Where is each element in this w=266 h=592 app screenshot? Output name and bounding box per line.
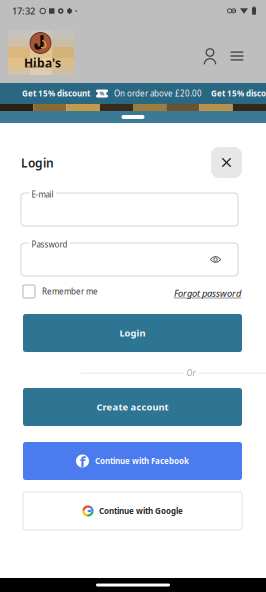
button[interactable]: Create account bbox=[23, 388, 242, 426]
staticText: f bbox=[80, 452, 86, 471]
staticText: a taste of india bbox=[27, 65, 47, 68]
staticText: Forgot password bbox=[174, 287, 241, 299]
staticText: Create account bbox=[96, 401, 168, 413]
button[interactable]: f bbox=[23, 442, 242, 480]
button[interactable]: Forgot password bbox=[174, 287, 241, 299]
staticText: Hiba's bbox=[24, 55, 61, 71]
staticText: 17:32 bbox=[12, 5, 35, 17]
button[interactable]: Remember me bbox=[23, 285, 98, 298]
staticText: Remember me bbox=[42, 286, 98, 297]
staticText: Login bbox=[119, 327, 145, 339]
button[interactable]: Account bbox=[196, 37, 224, 67]
button[interactable]: Continue with Google bbox=[23, 492, 242, 530]
staticText: % bbox=[99, 90, 104, 97]
staticText: Get 15% disco bbox=[211, 88, 266, 99]
staticText: E-mail bbox=[31, 189, 53, 200]
staticText: Or bbox=[186, 368, 195, 378]
staticText: On order above £20.00 bbox=[114, 88, 202, 99]
button[interactable]: Login bbox=[23, 314, 242, 352]
button[interactable]: Close bbox=[211, 147, 242, 178]
button[interactable]: Menu bbox=[223, 37, 251, 67]
staticText: Get 15% discount bbox=[22, 88, 90, 99]
staticText: Password bbox=[31, 239, 67, 250]
staticText: Continue with Facebook bbox=[95, 456, 189, 466]
staticText: Login bbox=[21, 155, 54, 171]
staticText: Continue with Google bbox=[99, 506, 183, 516]
